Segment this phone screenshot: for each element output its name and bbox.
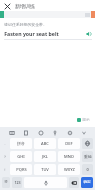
staticText: 确定 xyxy=(83,180,91,185)
button[interactable]: 符 xyxy=(2,177,10,188)
button[interactable]: DEF xyxy=(58,138,80,149)
button[interactable]: WXYZ xyxy=(58,164,80,175)
button[interactable]: Keyboard modes xyxy=(7,128,16,137)
button[interactable]: PQRS xyxy=(10,164,32,175)
staticText: MNO xyxy=(64,154,74,159)
button[interactable]: GHI xyxy=(10,151,32,162)
staticText: 符 xyxy=(4,180,8,185)
button[interactable]: JKL xyxy=(34,151,56,162)
button[interactable]: ！ xyxy=(1,163,9,176)
button[interactable]: Backspace xyxy=(69,177,79,188)
button[interactable]: Emoji xyxy=(36,128,45,137)
staticText: 0 xyxy=(86,167,89,172)
staticText: ABC xyxy=(41,141,49,146)
button[interactable]: Play pronunciation xyxy=(85,30,92,37)
button[interactable]: Clipboard xyxy=(21,128,30,137)
staticText: JKL xyxy=(42,154,48,159)
staticText: TUV xyxy=(41,167,49,172)
staticText: 重输 xyxy=(84,154,92,159)
button[interactable]: 确定 xyxy=(81,177,93,188)
button[interactable]: ？ xyxy=(1,150,9,163)
button[interactable]: 提示 xyxy=(77,117,90,122)
button[interactable]: Voice input xyxy=(50,128,59,137)
staticText: ！ xyxy=(3,168,7,172)
button[interactable]: 拼音 xyxy=(10,138,32,149)
staticText: GHI xyxy=(17,154,25,159)
button[interactable]: Close xyxy=(3,2,11,10)
staticText: DEF xyxy=(65,141,73,146)
staticText: ？ xyxy=(3,155,7,159)
button[interactable]: 123 xyxy=(12,177,22,188)
button[interactable]: 重输 xyxy=(82,151,93,162)
button[interactable]: ABC xyxy=(34,138,56,149)
button[interactable]: MNO xyxy=(58,151,80,162)
staticText: 提示 xyxy=(82,117,90,122)
staticText: 新增训练 xyxy=(15,3,35,9)
button[interactable]: Settings xyxy=(65,128,74,137)
button[interactable]: Switch language xyxy=(82,138,93,149)
button[interactable]: 0 xyxy=(82,164,93,175)
staticText: 123 xyxy=(14,180,21,185)
staticText: 请记住系好您的安全带。 xyxy=(4,22,47,27)
staticText: 拼音 xyxy=(17,141,25,146)
button[interactable]: Hide keyboard xyxy=(79,128,88,137)
staticText: PQRS xyxy=(16,167,27,172)
button[interactable]: Space / voice xyxy=(24,177,67,188)
staticText: Fasten your seat belt xyxy=(4,30,59,37)
staticText: WXYZ xyxy=(64,167,75,172)
button[interactable]: TUV xyxy=(34,164,56,175)
